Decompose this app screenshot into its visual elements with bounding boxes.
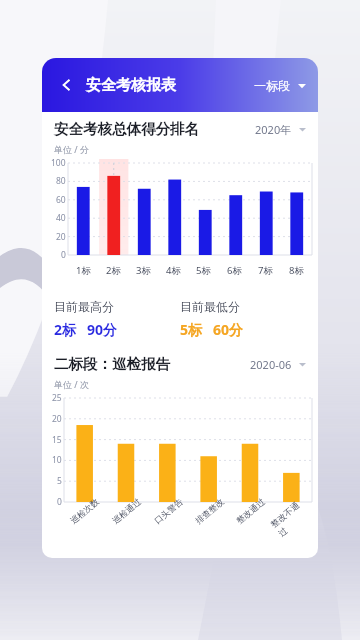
staticText: 6标 <box>227 264 242 277</box>
staticText: 60 <box>56 194 66 206</box>
staticText: 7标 <box>258 264 273 277</box>
staticText: 巡检次数 <box>68 496 101 527</box>
staticText: 排查整改 <box>193 496 226 527</box>
staticText: 目前最高分 <box>54 299 114 314</box>
staticText: 整改不通过 <box>269 495 314 539</box>
staticText: 安全考核总体得分排名 <box>54 120 199 138</box>
staticText: 0 <box>61 249 66 261</box>
staticText: 目前最低分 <box>180 299 240 314</box>
staticText: 4标 <box>166 264 181 277</box>
staticText: 0 <box>57 496 62 508</box>
staticText: 口头警告 <box>152 496 185 527</box>
staticText: 100 <box>51 157 66 169</box>
staticText: 单位 / 分 <box>54 143 90 155</box>
staticText: 二标段：巡检报告 <box>54 355 170 373</box>
staticText: 5 <box>57 475 62 487</box>
staticText: 15 <box>52 434 62 446</box>
staticText: 2标 <box>106 264 121 277</box>
button[interactable]: 2020-06 <box>250 357 306 372</box>
staticText: 20 <box>56 231 66 243</box>
staticText: 8标 <box>289 264 304 277</box>
button[interactable]: 一标段 <box>254 78 306 93</box>
staticText: 2020-06 <box>250 357 292 372</box>
staticText: 40 <box>56 212 66 224</box>
staticText: 5标 60分 <box>180 320 243 339</box>
staticText: 整改通过 <box>234 496 267 527</box>
staticText: 巡检通过 <box>110 496 143 527</box>
staticText: 安全考核报表 <box>86 76 176 95</box>
button[interactable]: 2020年 <box>255 122 306 137</box>
staticText: 1标 <box>76 264 91 277</box>
staticText: 10 <box>52 454 62 466</box>
staticText: 单位 / 次 <box>54 378 90 390</box>
staticText: 20 <box>52 413 62 425</box>
staticText: 25 <box>52 392 62 404</box>
staticText: 80 <box>56 175 66 187</box>
staticText: 5标 <box>196 264 211 277</box>
button[interactable]: Back <box>54 72 80 98</box>
staticText: 2020年 <box>255 122 292 137</box>
staticText: 3标 <box>136 264 151 277</box>
staticText: 2标 90分 <box>54 320 117 339</box>
staticText: 一标段 <box>254 78 290 93</box>
